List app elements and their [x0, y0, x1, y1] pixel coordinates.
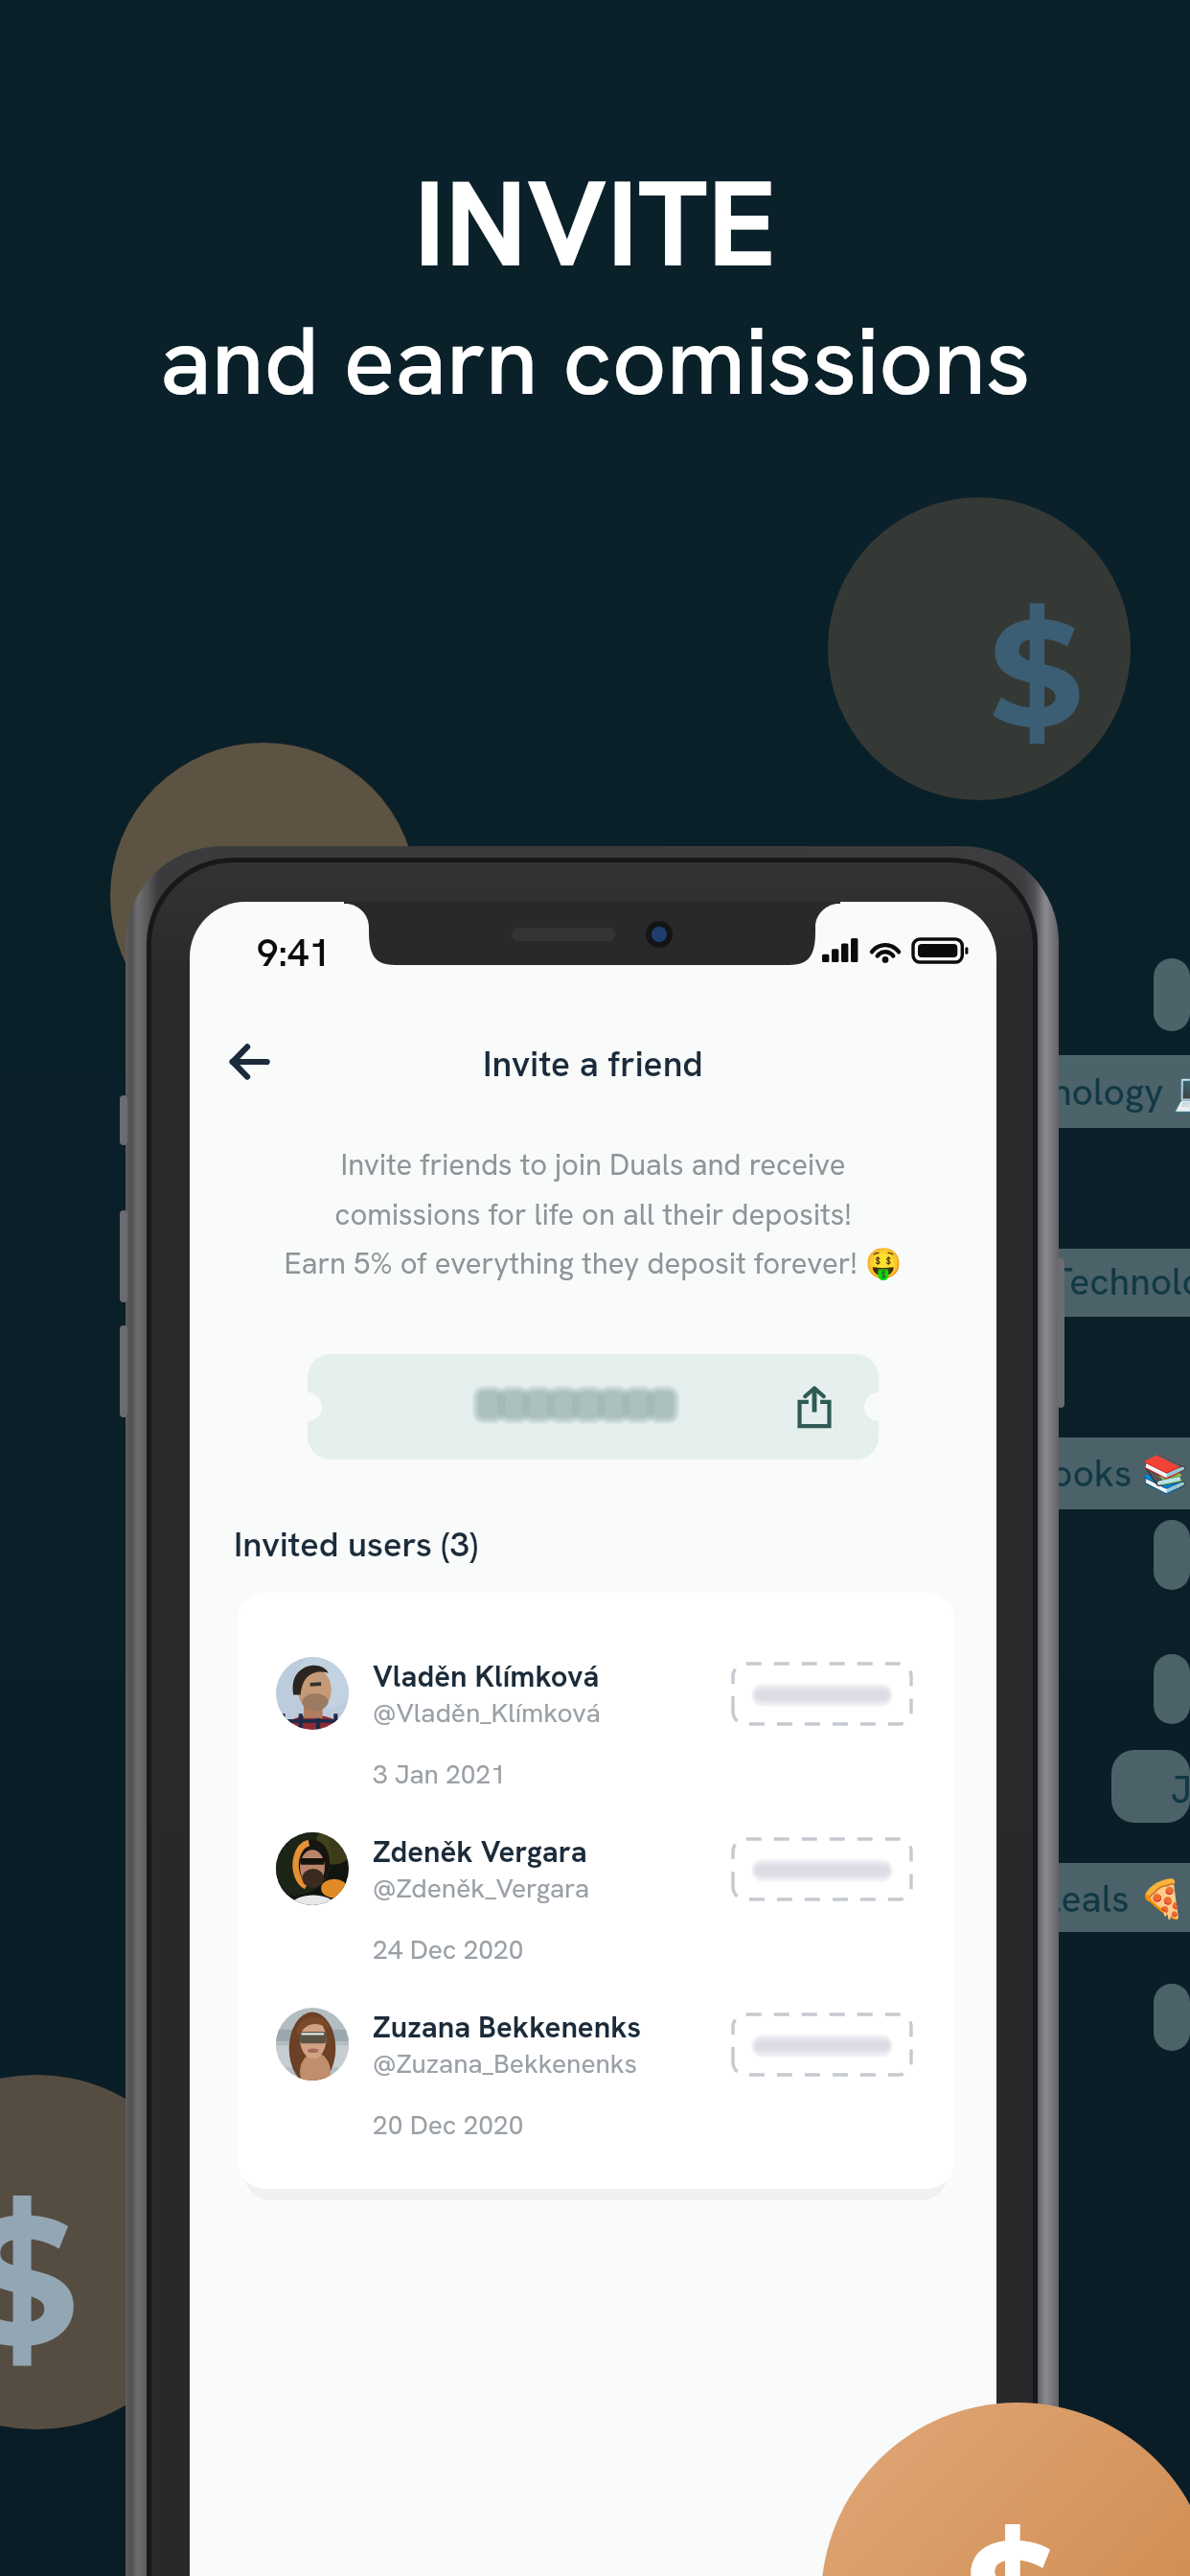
staticText: Earn 5% of everything they deposit forev…	[190, 1244, 996, 1282]
staticText: INVITE	[414, 147, 777, 302]
staticText: @Zdeněk_Vergara	[373, 1871, 590, 1905]
staticText: 24 Dec 2020	[373, 1932, 524, 1966]
staticText: Vladěn Klímková	[373, 1657, 600, 1695]
staticText: 20 Dec 2020	[373, 2107, 524, 2142]
staticText: @Zuzana_Bekkenenks	[373, 2046, 637, 2081]
staticText: ooks 📚	[1051, 1449, 1189, 1498]
button[interactable]: Zdeněk Vergara	[238, 1815, 954, 1983]
button[interactable]: Share invite code	[787, 1379, 842, 1435]
staticText: Invite a friend	[483, 1041, 703, 1087]
staticText: $	[0, 2170, 79, 2377]
staticText: $	[989, 582, 1084, 752]
staticText: leals 🍕	[1051, 1874, 1186, 1923]
staticText: Jo	[1171, 1765, 1190, 1814]
staticText: Zdeněk Vergara	[373, 1832, 587, 1871]
staticText: and earn comissions	[160, 299, 1031, 423]
staticText: $	[965, 2503, 1059, 2576]
staticText: Technolog	[1051, 1257, 1190, 1306]
staticText: Invite friends to join Duals and receive…	[190, 1145, 996, 1233]
staticText: nology 💻	[1051, 1068, 1190, 1116]
staticText: Invited users (3)	[234, 1522, 479, 1567]
staticText: Zuzana Bekkenenks	[373, 2008, 642, 2046]
button[interactable]: Share invite code	[308, 1354, 879, 1460]
staticText: 3 Jan 2021	[373, 1757, 506, 1791]
button[interactable]: Zuzana Bekkenenks	[238, 1990, 954, 2158]
staticText: 9:41	[257, 928, 331, 977]
button[interactable]: Back	[217, 1029, 282, 1094]
button[interactable]: Vladěn Klímková	[238, 1640, 954, 1807]
staticText: @Vladěn_Klímková	[373, 1695, 601, 1730]
